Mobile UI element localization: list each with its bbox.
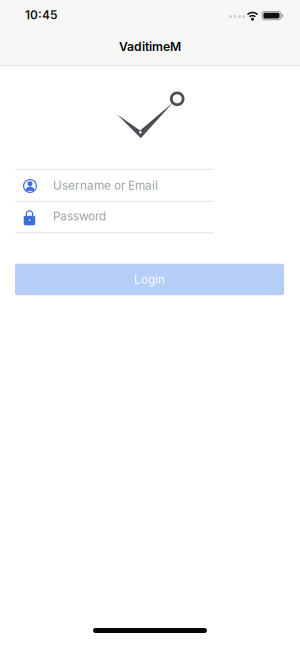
- staticText: Login: [134, 272, 165, 286]
- button[interactable]: Password: [15, 201, 214, 232]
- button[interactable]: Login: [15, 264, 284, 295]
- staticText: VaditimeM: [119, 39, 181, 54]
- button[interactable]: Username or Email: [15, 170, 214, 201]
- staticText: Password: [53, 209, 106, 223]
- staticText: Username or Email: [53, 178, 158, 193]
- staticText: 10:45: [25, 8, 57, 22]
